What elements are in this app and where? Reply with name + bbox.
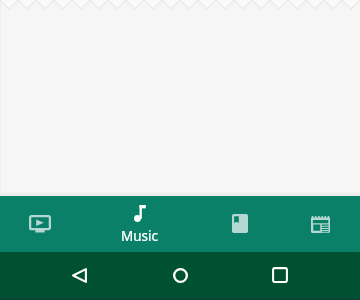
button[interactable]: Home	[156, 251, 204, 299]
staticText: Music	[121, 227, 159, 245]
button[interactable]: Music	[100, 196, 180, 252]
button[interactable]: Recent apps	[256, 251, 304, 299]
button[interactable]: News	[280, 196, 360, 252]
button[interactable]: Videos	[0, 196, 80, 252]
button[interactable]: Back	[55, 251, 103, 299]
button[interactable]: Books	[200, 195, 280, 251]
